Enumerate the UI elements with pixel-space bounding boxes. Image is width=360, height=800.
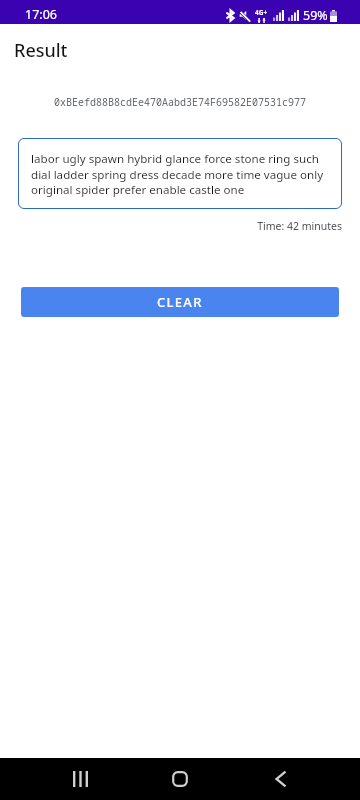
- button[interactable]: CLEAR: [21, 287, 339, 317]
- staticText: 59%: [303, 7, 328, 24]
- staticText: 4G+: [255, 8, 268, 17]
- button[interactable]: Back: [251, 758, 311, 800]
- staticText: 0xBEefd88B8cdEe470Aabd3E74F69582E07531c9…: [0, 95, 360, 109]
- button[interactable]: Recent apps: [50, 758, 110, 800]
- staticText: 17:06: [25, 6, 57, 23]
- staticText: Time: 42 minutes: [0, 219, 342, 233]
- staticText: CLEAR: [157, 293, 203, 311]
- staticText: labor ugly spawn hybrid glance force sto…: [31, 151, 332, 197]
- button[interactable]: Home: [150, 758, 210, 800]
- staticText: Result: [14, 38, 68, 63]
